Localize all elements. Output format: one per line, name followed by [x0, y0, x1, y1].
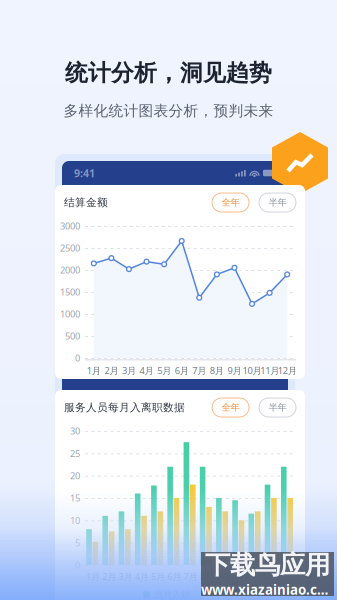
button[interactable]: 全年 [212, 193, 249, 212]
staticText: 1月 [87, 364, 101, 377]
staticText: 2500 [60, 242, 80, 254]
staticText: 25 [70, 447, 80, 459]
staticText: 5月 [151, 570, 165, 583]
staticText: 5 [75, 536, 80, 549]
staticText: 半年 [268, 197, 286, 208]
staticText: 当月入职 [154, 589, 190, 600]
staticText: 全年 [221, 402, 239, 413]
button[interactable]: 半年 [259, 398, 296, 417]
staticText: 8月 [200, 570, 214, 583]
staticText: 7月 [183, 570, 197, 583]
staticText: 10 [70, 514, 80, 526]
staticText: 500 [65, 330, 80, 342]
staticText: 12月 [262, 570, 281, 583]
staticText: 6月 [175, 364, 189, 377]
staticText: 6月 [167, 570, 181, 583]
staticText: 全年 [221, 197, 239, 208]
staticText: 1500 [60, 286, 80, 298]
staticText: 服务人员每月入离职数据 [64, 401, 185, 414]
staticText: 30 [70, 425, 80, 437]
staticText: 9月 [227, 364, 241, 377]
staticText: 9:41 [74, 166, 95, 180]
staticText: 10月 [230, 570, 249, 583]
staticText: 2月 [102, 570, 116, 583]
staticText: 11月 [260, 364, 279, 377]
staticText: www.xiazainiao.com [201, 581, 334, 598]
staticText: 15 [70, 492, 80, 504]
staticText: 10月 [242, 364, 261, 377]
staticText: 3月 [122, 364, 136, 377]
staticText: 1月 [86, 570, 100, 583]
staticText: 9月 [216, 570, 230, 583]
button[interactable]: 半年 [259, 193, 296, 212]
staticText: 0 [75, 559, 80, 571]
staticText: 12月 [278, 364, 297, 377]
staticText: 3000 [60, 220, 80, 232]
staticText: 20 [70, 469, 80, 482]
staticText: 多样化统计图表分析，预判未来 [63, 102, 273, 120]
staticText: 下载鸟应用 [205, 550, 330, 581]
staticText: 2000 [60, 264, 80, 276]
staticText: 1000 [60, 308, 80, 320]
staticText: 7月 [192, 364, 206, 377]
staticText: 4月 [139, 364, 153, 377]
staticText: 2月 [104, 364, 118, 377]
staticText: 统计分析，洞见趋势 [65, 59, 272, 87]
staticText: 11月 [246, 570, 265, 583]
staticText: 0 [75, 352, 80, 364]
button[interactable]: 全年 [212, 398, 249, 417]
staticText: 8月 [210, 364, 224, 377]
staticText: 结算金额 [64, 196, 108, 209]
staticText: 5月 [157, 364, 171, 377]
staticText: 半年 [268, 402, 286, 413]
staticText: 4月 [135, 570, 149, 583]
staticText: 3月 [119, 570, 133, 583]
